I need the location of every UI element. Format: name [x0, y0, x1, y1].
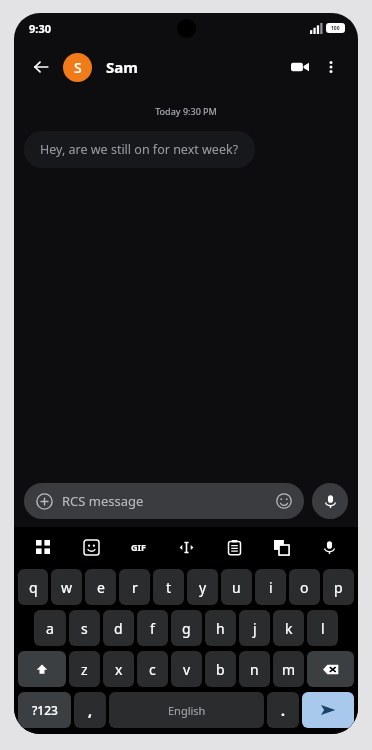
staticText: q [29, 578, 38, 597]
button[interactable]: Shift [18, 651, 66, 687]
staticText: p [334, 578, 343, 597]
other: Attach [34, 491, 54, 511]
staticText: x [115, 660, 123, 679]
staticText: , [88, 701, 92, 720]
staticText: n [250, 660, 259, 679]
button[interactable]: English [109, 692, 264, 728]
button[interactable]: q [18, 569, 48, 605]
button[interactable]: e [85, 569, 116, 605]
button[interactable]: Attach [24, 483, 304, 519]
staticText: c [149, 660, 156, 679]
button[interactable]: p [323, 569, 354, 605]
button[interactable]: grid [28, 532, 58, 562]
button[interactable]: u [221, 569, 252, 605]
button[interactable]: Voice input [314, 532, 344, 562]
button[interactable]: y [187, 569, 218, 605]
button[interactable]: , [74, 692, 106, 728]
staticText: GIF [131, 541, 146, 553]
button[interactable]: Video call [284, 51, 316, 83]
button[interactable]: z [69, 651, 100, 687]
staticText: w [61, 578, 73, 597]
button[interactable]: s [69, 610, 100, 646]
staticText: 100 [331, 25, 340, 32]
button[interactable]: d [103, 610, 134, 646]
staticText: e [97, 578, 105, 597]
button[interactable]: ?123 [18, 692, 71, 728]
button[interactable]: m [273, 651, 304, 687]
button[interactable]: a [34, 610, 66, 646]
button[interactable]: . [267, 692, 299, 728]
staticText: d [114, 619, 123, 638]
staticText: k [285, 619, 293, 638]
staticText: f [150, 619, 155, 638]
button[interactable]: Send [302, 692, 354, 728]
button[interactable]: j [239, 610, 270, 646]
button[interactable]: w [51, 569, 82, 605]
button[interactable]: o [289, 569, 320, 605]
button[interactable]: b [205, 651, 236, 687]
button[interactable]: x [103, 651, 134, 687]
button[interactable]: c [137, 651, 168, 687]
staticText: Today 9:30 PM [14, 105, 358, 117]
button[interactable]: Backspace [307, 651, 354, 687]
staticText: b [216, 660, 225, 679]
button[interactable]: More options [316, 52, 346, 82]
staticText: S [74, 58, 82, 77]
staticText: a [46, 619, 54, 638]
button[interactable]: i [255, 569, 286, 605]
button[interactable]: S [63, 53, 92, 82]
button[interactable]: Translate [266, 532, 296, 562]
staticText: t [166, 578, 172, 597]
staticText: z [81, 660, 88, 679]
staticText: s [81, 619, 88, 638]
button[interactable]: h [205, 610, 236, 646]
button[interactable]: Stickers [76, 532, 106, 562]
staticText: r [132, 578, 138, 597]
button[interactable]: Hey, are we still on for next week? [24, 131, 255, 168]
staticText: j [253, 619, 257, 638]
staticText: Hey, are we still on for next week? [40, 141, 239, 158]
button[interactable]: t [153, 569, 184, 605]
button[interactable]: n [239, 651, 270, 687]
staticText: m [282, 660, 296, 679]
staticText: English [168, 703, 206, 718]
staticText: o [300, 578, 309, 597]
button[interactable]: r [119, 569, 150, 605]
button[interactable]: Back [26, 52, 56, 82]
button[interactable]: Text editing [171, 532, 201, 562]
button[interactable]: f [137, 610, 168, 646]
staticText: Sam [106, 57, 138, 77]
staticText: i [269, 578, 273, 597]
staticText: y [199, 578, 207, 597]
button[interactable]: l [307, 610, 338, 646]
staticText: h [216, 619, 225, 638]
staticText: RCS message [62, 492, 144, 510]
staticText: l [321, 619, 325, 638]
button[interactable]: g [171, 610, 202, 646]
staticText: v [183, 660, 191, 679]
staticText: ?123 [32, 702, 58, 718]
button[interactable]: Voice message [312, 483, 348, 519]
staticText: g [182, 619, 191, 638]
button[interactable]: GIF [123, 532, 153, 562]
button[interactable]: v [171, 651, 202, 687]
staticText: u [232, 578, 241, 597]
button[interactable]: Clipboard [219, 532, 249, 562]
staticText: 9:30 [29, 21, 51, 36]
other: Emoji [274, 491, 294, 511]
staticText: . [281, 701, 285, 720]
button[interactable]: k [273, 610, 304, 646]
